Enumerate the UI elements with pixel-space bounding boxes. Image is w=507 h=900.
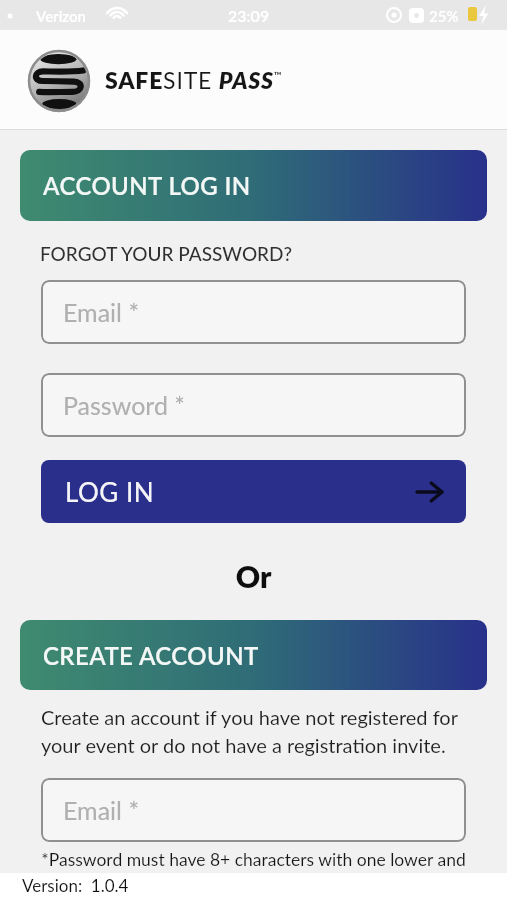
staticText: Or bbox=[0, 558, 507, 594]
staticText: Verizon bbox=[36, 7, 87, 25]
staticText: Email * bbox=[63, 297, 140, 327]
staticText: Create an account if you have not regist… bbox=[41, 705, 458, 758]
staticText: Email * bbox=[63, 795, 140, 825]
button[interactable]: Email * bbox=[41, 778, 466, 842]
staticText: LOG IN bbox=[65, 476, 155, 507]
staticText: *Password must have 8+ characters with o… bbox=[0, 849, 507, 870]
button[interactable]: Password * bbox=[41, 373, 466, 437]
staticText: 25% bbox=[429, 7, 459, 25]
staticText: Version: 1.0.4 bbox=[22, 875, 129, 895]
button[interactable]: ACCOUNT LOG IN bbox=[20, 150, 487, 221]
staticText: Password * bbox=[63, 390, 185, 420]
staticText: CREATE ACCOUNT bbox=[43, 641, 259, 670]
staticText: 23:09 bbox=[228, 6, 270, 25]
staticText: FORGOT YOUR PASSWORD? bbox=[40, 242, 293, 265]
button[interactable]: CREATE ACCOUNT bbox=[20, 620, 487, 690]
button[interactable]: LOG IN bbox=[41, 460, 466, 523]
staticText: ACCOUNT LOG IN bbox=[43, 171, 251, 200]
button[interactable]: Email * bbox=[41, 280, 466, 344]
staticText: SAFESITE PASS™ bbox=[105, 66, 283, 94]
button[interactable]: FORGOT YOUR PASSWORD? bbox=[40, 242, 293, 265]
